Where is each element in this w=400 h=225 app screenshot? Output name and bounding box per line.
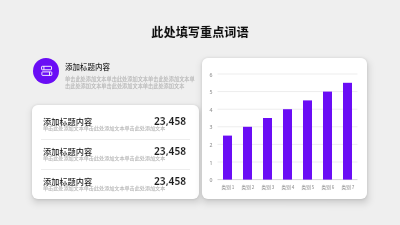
button[interactable]: 添加标题内容 xyxy=(32,110,199,139)
button[interactable]: 添加标题内容 xyxy=(32,170,199,199)
staticText: 单击此处添加文本单击此处添加文本单击此处添加文本单击此处添加文本单击此处添加文本… xyxy=(65,75,195,89)
staticText: 类别 7 xyxy=(337,184,359,191)
staticText: 0 xyxy=(207,176,215,183)
staticText: 5 xyxy=(207,88,215,95)
staticText: 单击此处添加文本单击此处添加文本单击此处添加文本 xyxy=(43,124,166,131)
staticText: 23,458 xyxy=(154,174,187,188)
staticText: 2 xyxy=(207,141,215,148)
staticText: 单击此处添加文本单击此处添加文本单击此处添加文本 xyxy=(43,184,166,191)
staticText: 此处填写重点词语 xyxy=(0,23,400,41)
button[interactable]: 0 xyxy=(202,58,367,199)
staticText: 添加标题内容 xyxy=(65,61,110,72)
staticText: 添加标题内容 xyxy=(43,175,93,187)
button[interactable]: Category xyxy=(33,58,59,84)
staticText: 添加标题内容 xyxy=(43,115,93,127)
staticText: 23,458 xyxy=(154,114,187,128)
staticText: 类别 3 xyxy=(257,184,279,191)
staticText: 添加标题内容 xyxy=(43,145,93,157)
staticText: 6 xyxy=(207,71,215,78)
staticText: 1 xyxy=(207,159,215,166)
staticText: 单击此处添加文本单击此处添加文本单击此处添加文本 xyxy=(43,154,166,161)
staticText: 类别 1 xyxy=(217,184,239,191)
staticText: 类别 5 xyxy=(297,184,319,191)
staticText: 类别 6 xyxy=(317,184,339,191)
staticText: 3 xyxy=(207,123,215,130)
staticText: 类别 2 xyxy=(237,184,259,191)
staticText: 4 xyxy=(207,106,215,113)
staticText: 23,458 xyxy=(154,144,187,158)
button[interactable]: 添加标题内容 xyxy=(32,140,199,169)
staticText: 类别 4 xyxy=(277,184,299,191)
